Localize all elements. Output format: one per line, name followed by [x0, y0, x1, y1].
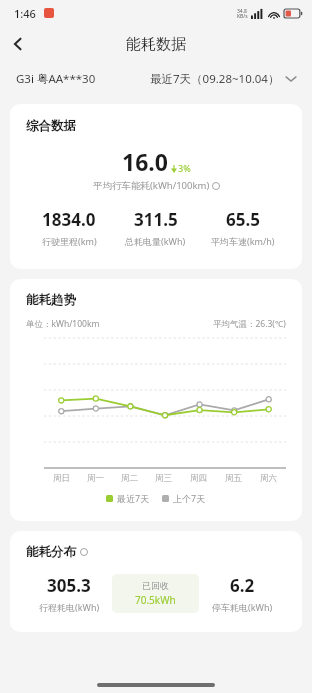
staticText: 1834.0	[42, 208, 96, 231]
staticText: 16.0	[122, 146, 168, 177]
staticText: 行程耗电(kWh)	[39, 601, 100, 613]
staticText: 已回收	[142, 580, 169, 591]
button[interactable]: G3i 粤AA***30	[16, 71, 96, 87]
button[interactable]: Back	[0, 26, 36, 62]
staticText: 最近7天（09.28~10.04）	[150, 71, 280, 87]
staticText: 能耗趋势	[26, 292, 76, 308]
staticText: 上个7天	[173, 492, 206, 504]
staticText: 综合数据	[26, 118, 76, 134]
staticText: 34.8 KB/s	[237, 8, 248, 19]
button[interactable]: 最近7天（09.28~10.04）	[150, 71, 296, 87]
staticText: 3%	[178, 162, 191, 174]
staticText: 6.2	[230, 574, 255, 597]
staticText: 周三	[155, 473, 172, 484]
staticText: 周六	[260, 473, 277, 484]
staticText: 周一	[87, 473, 104, 484]
staticText: 平均行车能耗(kWh/100km)	[93, 179, 210, 192]
staticText: 70.5kWh	[135, 593, 176, 607]
staticText: 能耗分布	[26, 544, 76, 560]
staticText: 1:46	[14, 6, 36, 21]
staticText: 65.5	[226, 208, 260, 231]
staticText: 周四	[190, 473, 207, 484]
staticText: 最近7天	[117, 492, 150, 504]
staticText: 305.3	[47, 574, 91, 597]
staticText: 单位：kWh/100km	[26, 318, 100, 330]
staticText: 周五	[225, 473, 242, 484]
staticText: 总耗电量(kWh)	[125, 235, 186, 247]
staticText: 平均车速(km/h)	[211, 235, 275, 247]
staticText: 平均气温：26.3(℃)	[213, 318, 286, 330]
staticText: G3i 粤AA***30	[16, 71, 96, 87]
staticText: 周日	[53, 473, 70, 484]
staticText: 周二	[121, 473, 138, 484]
staticText: 行驶里程(km)	[42, 235, 97, 247]
staticText: 能耗数据	[126, 35, 186, 54]
staticText: 停车耗电(kWh)	[212, 601, 273, 613]
staticText: 311.5	[134, 208, 178, 231]
